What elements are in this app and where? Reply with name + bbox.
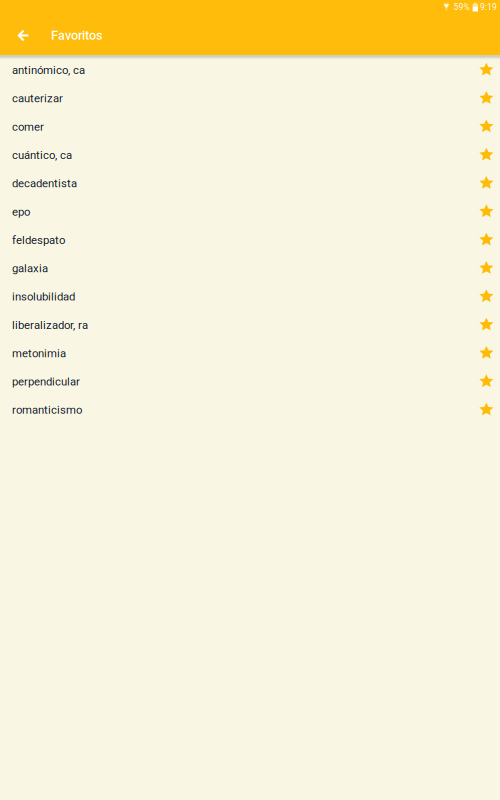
button[interactable]: perpendicular (0, 367, 500, 396)
button[interactable]: decadentista (0, 169, 500, 198)
staticText: cauterizar (12, 92, 63, 105)
button[interactable]: Quitar de favoritos: comer (479, 119, 500, 134)
button[interactable]: romanticismo (0, 396, 500, 424)
staticText: liberalizador, ra (12, 318, 88, 332)
button[interactable]: Quitar de favoritos: romanticismo (479, 402, 500, 417)
staticText: 59% (454, 2, 470, 12)
staticText: comer (12, 120, 44, 133)
staticText: metonimia (12, 347, 66, 360)
button[interactable]: Quitar de favoritos: feldespato (479, 233, 500, 247)
staticText: 9:19 (480, 2, 497, 12)
button[interactable]: Quitar de favoritos: liberalizador, ra (479, 318, 500, 332)
button[interactable]: cuántico, ca (0, 141, 500, 169)
button[interactable]: Quitar de favoritos: perpendicular (479, 374, 500, 389)
button[interactable]: feldespato (0, 226, 500, 254)
button[interactable]: insolubilidad (0, 283, 500, 311)
staticText: Favoritos (51, 28, 103, 43)
button[interactable]: Quitar de favoritos: cauterizar (479, 91, 500, 106)
staticText: perpendicular (12, 375, 80, 388)
button[interactable]: antinómico, ca (0, 56, 500, 84)
button[interactable]: Quitar de favoritos: epo (479, 204, 500, 219)
button[interactable]: epo (0, 198, 500, 226)
staticText: cuántico, ca (12, 148, 72, 162)
button[interactable]: Quitar de favoritos: cuántico, ca (479, 148, 500, 163)
button[interactable]: Back (0, 14, 46, 54)
staticText: decadentista (12, 177, 77, 190)
button[interactable]: Quitar de favoritos: galaxia (479, 261, 500, 276)
button[interactable]: Quitar de favoritos: decadentista (479, 176, 500, 191)
button[interactable]: metonimia (0, 339, 500, 367)
button[interactable]: Quitar de favoritos: insolubilidad (479, 289, 500, 304)
staticText: feldespato (12, 233, 65, 247)
button[interactable]: Quitar de favoritos: metonimia (479, 346, 500, 361)
button[interactable]: galaxia (0, 254, 500, 282)
staticText: romanticismo (12, 403, 82, 417)
staticText: galaxia (12, 262, 48, 275)
button[interactable]: Quitar de favoritos: antinómico, ca (479, 63, 500, 78)
button[interactable]: liberalizador, ra (0, 311, 500, 339)
staticText: antinómico, ca (12, 63, 85, 77)
staticText: insolubilidad (12, 290, 75, 303)
button[interactable]: cauterizar (0, 84, 500, 113)
button[interactable]: comer (0, 113, 500, 141)
staticText: epo (12, 205, 30, 218)
